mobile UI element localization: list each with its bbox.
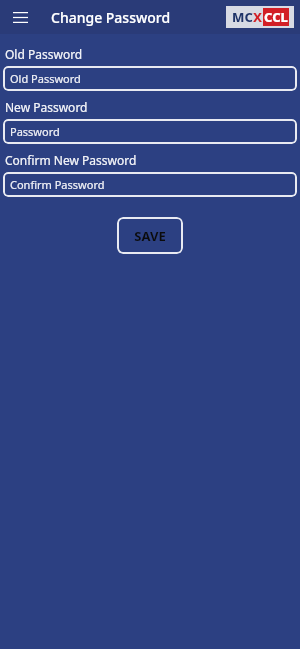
staticText: Change Password	[51, 8, 171, 27]
staticText: X	[253, 8, 263, 26]
button[interactable]: Open navigation menu	[6, 3, 34, 31]
button[interactable]: Old Password	[3, 66, 297, 91]
staticText: MC	[232, 8, 253, 26]
staticText: New Password	[5, 99, 88, 115]
button[interactable]: SAVE	[117, 217, 183, 254]
button[interactable]: Confirm Password	[3, 172, 297, 197]
staticText: Old Password	[10, 71, 81, 86]
staticText: Password	[10, 124, 60, 139]
button[interactable]: Password	[3, 119, 297, 144]
staticText: Old Password	[5, 46, 83, 62]
staticText: Confirm New Password	[5, 152, 137, 168]
staticText: SAVE	[134, 227, 166, 245]
staticText: CCL	[264, 8, 288, 26]
staticText: Confirm Password	[10, 177, 105, 192]
